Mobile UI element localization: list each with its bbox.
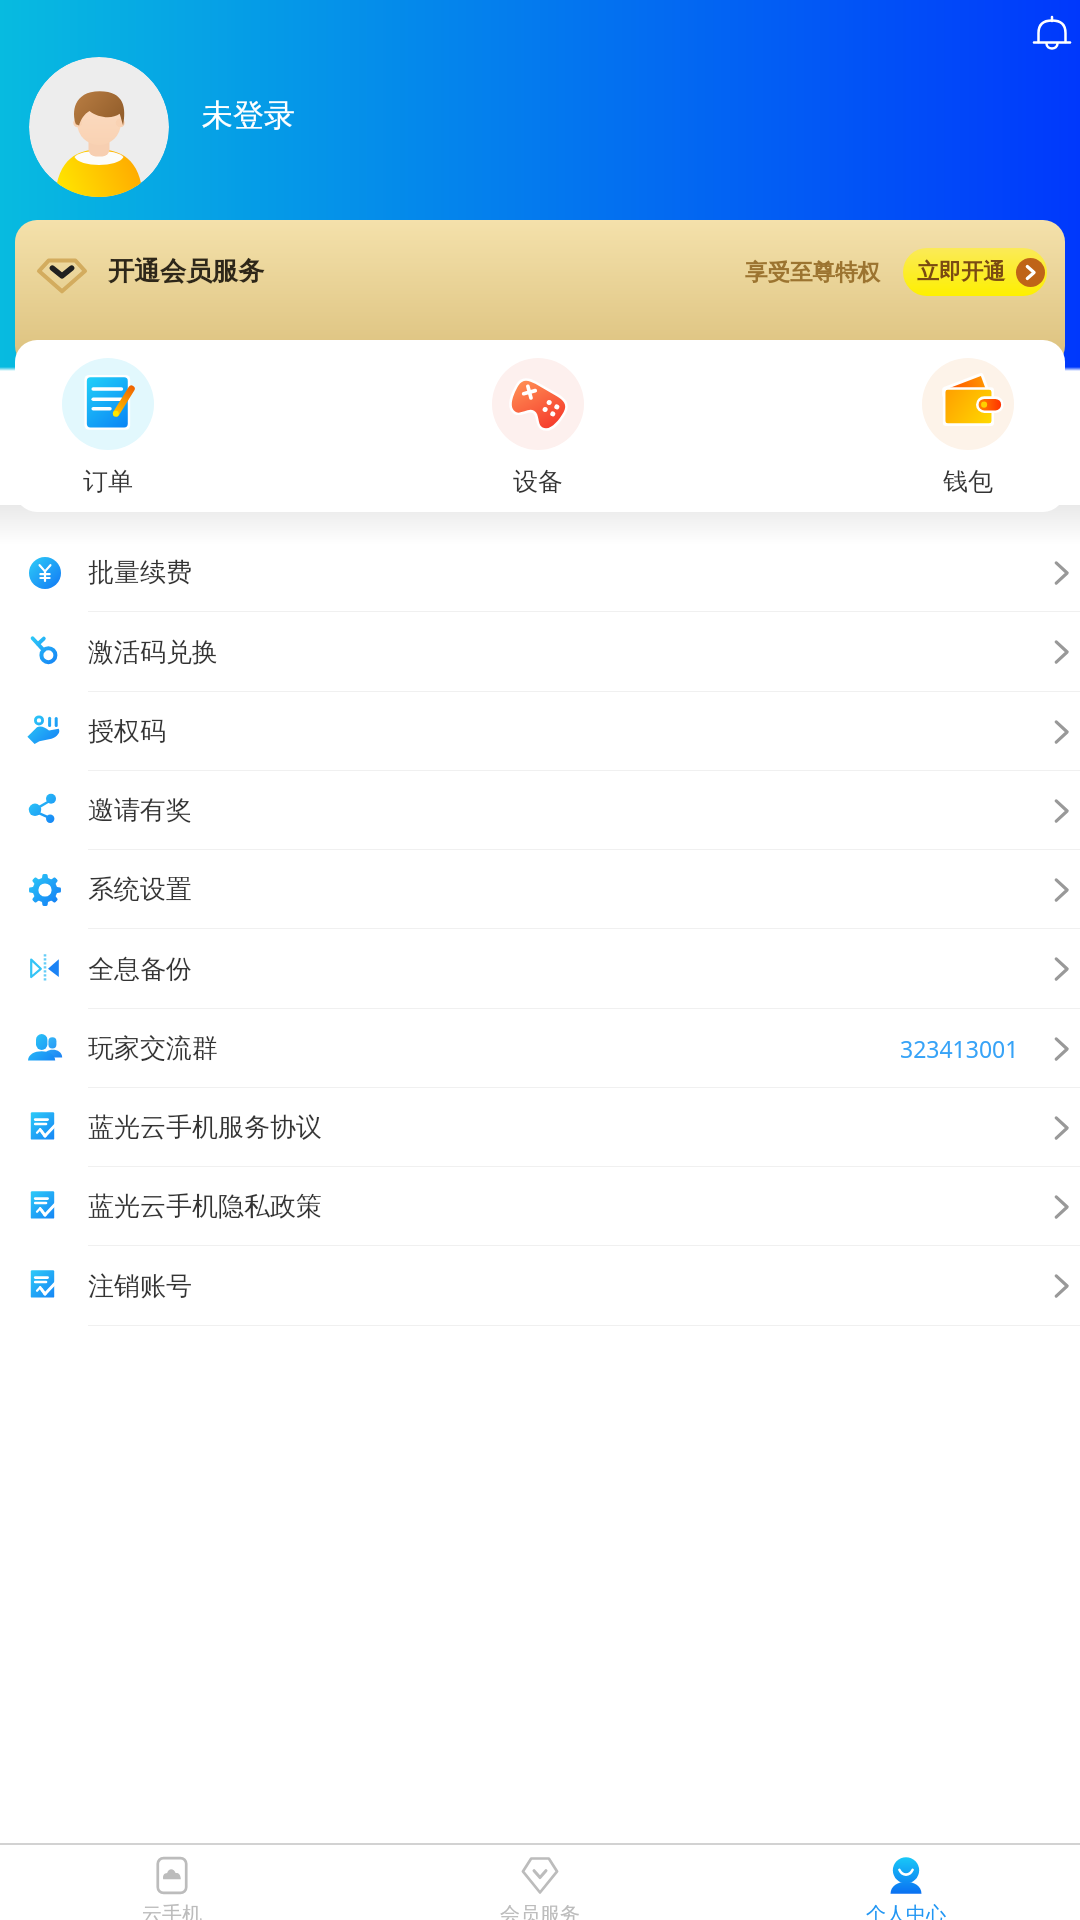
- button[interactable]: 系统设置: [0, 850, 1080, 929]
- button[interactable]: 邀请有奖: [0, 771, 1080, 850]
- button[interactable]: 全息备份: [0, 929, 1080, 1009]
- staticText: 开通会员服务: [108, 255, 264, 288]
- staticText: 全息备份: [88, 953, 192, 986]
- button[interactable]: Notifications: [1028, 11, 1076, 59]
- staticText: 激活码兑换: [88, 636, 218, 669]
- staticText: 323413001: [900, 1033, 1019, 1064]
- button[interactable]: 注销账号: [0, 1246, 1080, 1326]
- button[interactable]: 授权码: [0, 692, 1080, 771]
- staticText: 系统设置: [88, 873, 192, 906]
- button[interactable]: 个人中心: [846, 1845, 966, 1920]
- staticText: 未登录: [202, 96, 295, 135]
- staticText: 注销账号: [88, 1270, 192, 1303]
- button[interactable]: 玩家交流群: [0, 1009, 1080, 1088]
- staticText: 设备: [513, 466, 563, 497]
- staticText: 蓝光云手机隐私政策: [88, 1190, 322, 1223]
- button[interactable]: 激活码兑换: [0, 612, 1080, 692]
- staticText: 立即开通: [917, 258, 1005, 286]
- staticText: 订单: [83, 466, 133, 497]
- staticText: 批量续费: [88, 556, 192, 589]
- staticText: 授权码: [88, 715, 166, 748]
- staticText: 钱包: [943, 466, 993, 497]
- button[interactable]: 批量续费: [0, 533, 1080, 612]
- staticText: 邀请有奖: [88, 794, 192, 827]
- staticText: 云手机: [142, 1902, 202, 1920]
- staticText: 蓝光云手机服务协议: [88, 1111, 322, 1144]
- button[interactable]: 云手机: [112, 1845, 232, 1920]
- button[interactable]: [29, 57, 169, 197]
- button[interactable]: 会员服务: [480, 1845, 600, 1920]
- button[interactable]: 订单: [38, 358, 178, 497]
- button[interactable]: 蓝光云手机服务协议: [0, 1088, 1080, 1167]
- staticText: 个人中心: [866, 1902, 946, 1920]
- button[interactable]: 设备: [468, 358, 608, 497]
- button[interactable]: 开通会员服务: [15, 220, 1065, 368]
- staticText: 享受至尊特权: [745, 258, 880, 286]
- staticText: 玩家交流群: [88, 1032, 218, 1065]
- button[interactable]: 蓝光云手机隐私政策: [0, 1167, 1080, 1246]
- staticText: 会员服务: [500, 1902, 580, 1920]
- button[interactable]: 钱包: [898, 358, 1038, 497]
- button[interactable]: 立即开通: [903, 248, 1047, 296]
